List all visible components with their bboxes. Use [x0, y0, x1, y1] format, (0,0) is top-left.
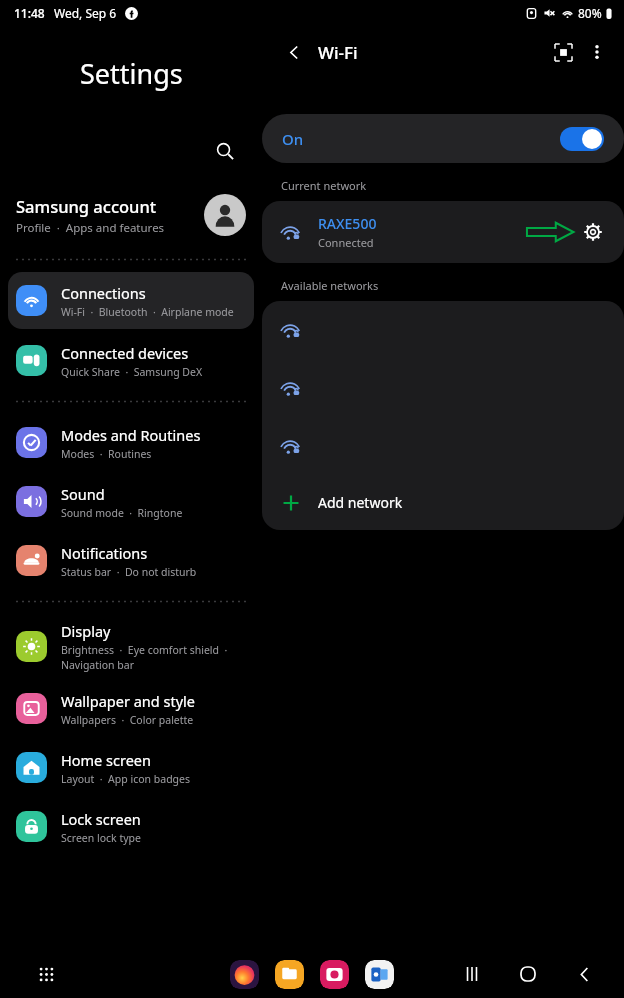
staticText: Wi-Fi · Bluetooth · Airplane mode: [61, 305, 234, 319]
button[interactable]: Wallpaper and style: [8, 680, 254, 737]
button[interactable]: Apps: [30, 958, 62, 990]
button[interactable]: Add network: [262, 475, 624, 530]
button[interactable]: files: [275, 960, 304, 989]
staticText: Wi-Fi: [318, 41, 358, 64]
button[interactable]: Search settings: [208, 134, 242, 168]
button[interactable]: Notifications: [8, 532, 254, 589]
staticText: Status bar · Do not disturb: [61, 565, 197, 579]
button[interactable]: firefox: [230, 960, 259, 989]
staticText: Navigation bar: [61, 658, 135, 672]
staticText: Profile · Apps and features: [16, 220, 165, 236]
button[interactable]: More options: [580, 35, 614, 69]
staticText: Samsung account: [16, 195, 157, 217]
button[interactable]: Sound: [8, 473, 254, 530]
staticText: Sound mode · Ringtone: [61, 506, 183, 520]
button[interactable]: outlook: [365, 960, 394, 989]
button[interactable]: Modes and Routines: [8, 414, 254, 471]
staticText: Notifications: [61, 543, 148, 563]
button[interactable]: Back: [278, 36, 310, 68]
button[interactable]: Recent apps: [458, 960, 486, 988]
button[interactable]: Display: [8, 614, 254, 678]
staticText: Layout · App icon badges: [61, 772, 191, 786]
staticText: Connected devices: [61, 343, 189, 363]
staticText: Screen lock type: [61, 831, 141, 845]
button[interactable]: Connections: [8, 272, 254, 329]
button[interactable]: RAXE500: [262, 201, 624, 263]
button[interactable]: Network settings: [578, 217, 608, 247]
staticText: Wallpapers · Color palette: [61, 713, 194, 727]
button[interactable]: Lock screen: [8, 798, 254, 855]
button[interactable]: Scan QR code: [546, 35, 580, 69]
staticText: Display: [61, 621, 111, 641]
staticText: 80%: [578, 5, 602, 21]
staticText: Connections: [61, 283, 146, 303]
button[interactable]: [262, 301, 624, 359]
staticText: 11:48: [14, 5, 45, 21]
button[interactable]: [262, 359, 624, 417]
staticText: Connected: [318, 235, 374, 250]
button[interactable]: Home: [514, 960, 542, 988]
button[interactable]: Connected devices: [8, 332, 254, 389]
staticText: RAXE500: [318, 214, 377, 233]
button[interactable]: Samsung account: [0, 182, 262, 248]
staticText: Current network: [281, 178, 367, 193]
staticText: Add network: [318, 493, 403, 512]
button[interactable]: Home screen: [8, 739, 254, 796]
staticText: Modes · Routines: [61, 447, 152, 461]
staticText: On: [282, 129, 304, 149]
staticText: Brightness · Eye comfort shield ·: [61, 643, 228, 657]
staticText: Available networks: [281, 278, 379, 293]
button[interactable]: [262, 417, 624, 475]
button[interactable]: Back: [570, 960, 598, 988]
button[interactable]: On: [262, 114, 624, 163]
staticText: Sound: [61, 484, 105, 504]
staticText: Wallpaper and style: [61, 691, 195, 711]
staticText: Home screen: [61, 750, 151, 770]
staticText: Settings: [80, 55, 183, 92]
staticText: Wed, Sep 6: [54, 5, 117, 21]
staticText: Modes and Routines: [61, 425, 201, 445]
button[interactable]: cam: [320, 960, 349, 989]
staticText: Quick Share · Samsung DeX: [61, 365, 203, 379]
staticText: Lock screen: [61, 809, 141, 829]
